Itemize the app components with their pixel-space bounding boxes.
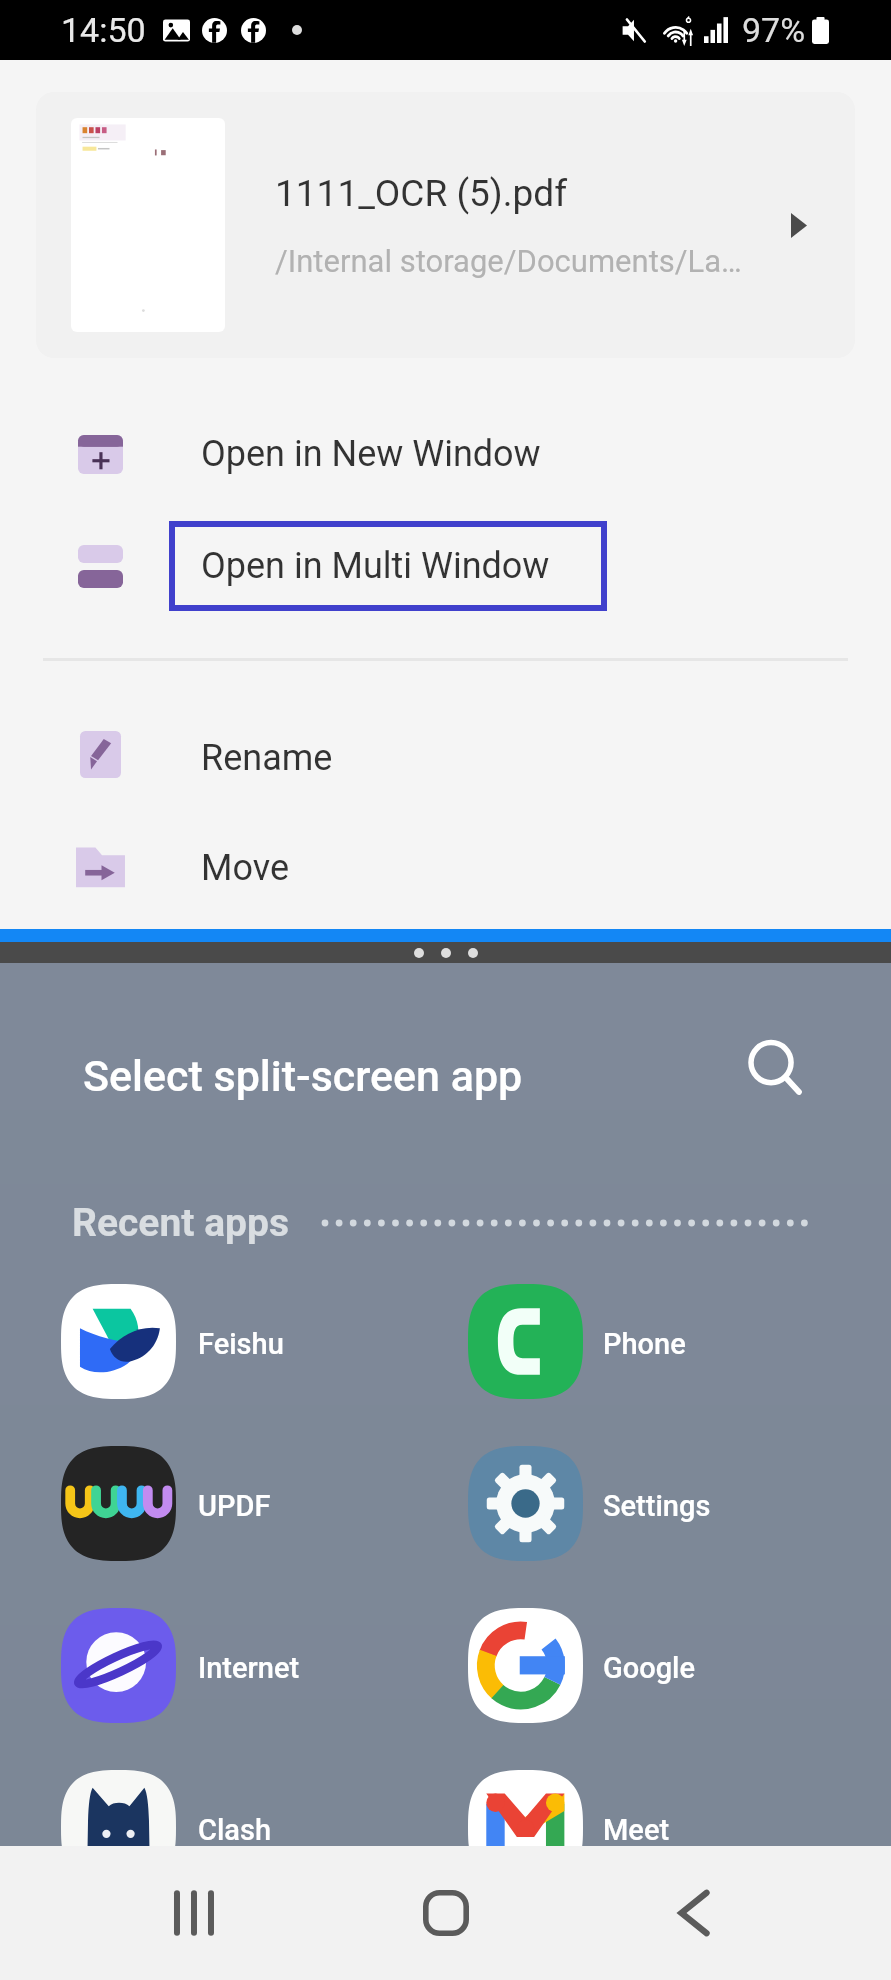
button[interactable]: UPDF (0, 1422, 445, 1584)
staticText: Feishu (198, 1327, 284, 1361)
staticText: Meet (603, 1813, 670, 1847)
staticText: 97% (742, 10, 806, 50)
staticText: UPDF (198, 1489, 271, 1523)
button[interactable]: Internet (0, 1584, 445, 1746)
button[interactable]: Settings (445, 1422, 891, 1584)
button[interactable]: Google (445, 1584, 891, 1746)
staticText: Move (201, 847, 289, 889)
staticText: Phone (603, 1327, 686, 1361)
staticText: /Internal storage/Documents/La… (275, 243, 742, 279)
button[interactable]: Back (634, 1846, 754, 1980)
staticText: Settings (603, 1489, 711, 1523)
staticText: Google (603, 1651, 696, 1685)
staticText: Open in Multi Window (201, 545, 550, 587)
button[interactable]: Open in New Window (0, 398, 891, 510)
staticText: Clash (198, 1813, 271, 1847)
staticText: 14:50 (61, 10, 146, 50)
button[interactable]: Expand file options (742, 92, 855, 358)
staticText: Internet (198, 1651, 300, 1685)
staticText: Rename (201, 737, 333, 779)
button[interactable]: Feishu (0, 1260, 445, 1422)
button[interactable]: Meet (445, 1746, 891, 1908)
staticText: 1111_OCR (5).pdf (275, 172, 567, 215)
staticText: Select split-screen app (83, 1051, 523, 1101)
button[interactable]: Phone (445, 1260, 891, 1422)
button[interactable]: Recent apps (137, 1846, 257, 1980)
button[interactable]: Move (0, 812, 891, 924)
button[interactable]: Home (386, 1846, 506, 1980)
button[interactable]: 1111_OCR (5).pdf (36, 92, 855, 358)
staticText: Recent apps (72, 1200, 289, 1246)
button[interactable]: Search (739, 1033, 811, 1105)
staticText: Open in New Window (201, 433, 541, 475)
button[interactable]: Open in Multi Window (0, 510, 891, 622)
button[interactable]: Clash (0, 1746, 445, 1908)
button[interactable]: Rename (0, 702, 891, 814)
